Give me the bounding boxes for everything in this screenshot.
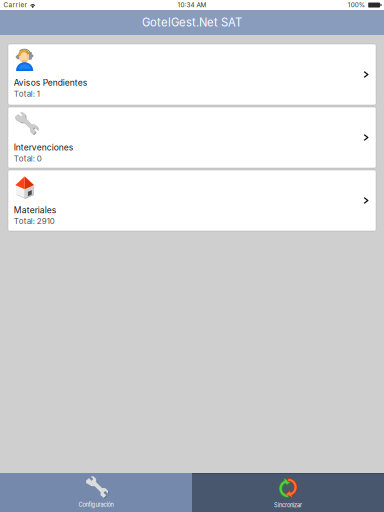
staticText: Sincronizar — [274, 502, 302, 509]
staticText: Intervenciones — [14, 142, 74, 153]
button[interactable]: Avisos Pendientes — [8, 44, 376, 105]
staticText: Materiales — [14, 205, 57, 215]
button[interactable]: Configuración — [0, 473, 192, 512]
staticText: Total: 1 — [14, 89, 40, 99]
button[interactable]: Intervenciones — [8, 107, 376, 168]
staticText: Carrier — [3, 1, 26, 9]
staticText: Avisos Pendientes — [14, 78, 88, 88]
button[interactable]: Sincronizar — [192, 473, 384, 512]
staticText: 100% — [348, 1, 365, 9]
staticText: Total: 2910 — [14, 216, 55, 226]
staticText: Configuración — [78, 501, 113, 508]
staticText: 10:34 AM — [177, 1, 206, 9]
staticText: GotelGest.Net SAT — [142, 16, 242, 29]
button[interactable]: Materiales — [8, 170, 376, 231]
staticText: Total: 0 — [14, 154, 42, 163]
